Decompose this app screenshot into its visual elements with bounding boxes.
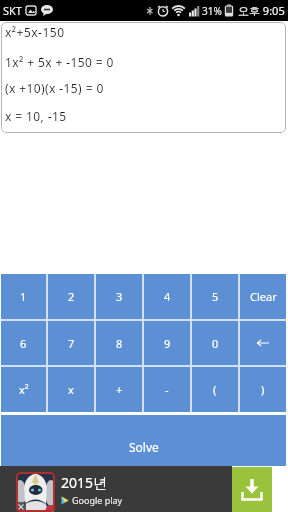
button[interactable]: - <box>144 367 190 412</box>
staticText: 3 <box>116 289 123 304</box>
staticText: 1x² + 5x + -150 = 0 <box>5 54 114 70</box>
button[interactable]: 8 <box>96 321 142 365</box>
button[interactable]: x <box>48 367 94 412</box>
button[interactable]: Solve <box>1 415 286 466</box>
button[interactable]: Clear <box>240 274 286 319</box>
button[interactable]: 3 <box>96 274 142 319</box>
staticText: 0 <box>212 336 219 351</box>
staticText: + <box>116 382 123 397</box>
staticText: Google play <box>72 494 123 506</box>
button[interactable]: 9 <box>144 321 190 365</box>
staticText: x <box>68 382 74 397</box>
button[interactable]: + <box>96 367 142 412</box>
staticText: 5 <box>212 289 219 304</box>
staticText: Solve <box>129 439 159 455</box>
staticText: 4 <box>164 289 171 304</box>
staticText: (x +10)(x -15) = 0 <box>5 80 104 96</box>
staticText: - <box>165 382 169 397</box>
staticText: x²+5x-150 <box>5 24 65 40</box>
staticText: ) <box>261 382 265 397</box>
button[interactable] <box>232 467 272 512</box>
staticText: Clear <box>250 289 277 304</box>
button[interactable]: 1 <box>1 274 46 319</box>
button[interactable]: ) <box>240 367 286 412</box>
button[interactable]: x² <box>1 367 46 412</box>
staticText: 7 <box>68 336 75 351</box>
staticText: x² <box>19 382 29 397</box>
staticText: 31% <box>202 4 222 18</box>
button[interactable] <box>240 321 286 365</box>
button[interactable]: 2015년 <box>0 466 232 512</box>
button[interactable]: 6 <box>1 321 46 365</box>
staticText: 1 <box>20 289 27 304</box>
button[interactable]: 7 <box>48 321 94 365</box>
staticText: x = 10, -15 <box>5 108 67 124</box>
staticText: 2 <box>68 289 75 304</box>
staticText: 오후 9:05 <box>238 3 285 18</box>
button[interactable]: 5 <box>192 274 238 319</box>
staticText: ( <box>213 382 217 397</box>
staticText: 8 <box>116 336 123 351</box>
button[interactable]: 2 <box>48 274 94 319</box>
staticText: 6 <box>20 336 27 351</box>
staticText: 2015년 <box>61 473 108 492</box>
button[interactable]: 4 <box>144 274 190 319</box>
button[interactable]: ( <box>192 367 238 412</box>
button[interactable]: 0 <box>192 321 238 365</box>
staticText: 9 <box>164 336 171 351</box>
staticText: SKT <box>3 3 22 18</box>
